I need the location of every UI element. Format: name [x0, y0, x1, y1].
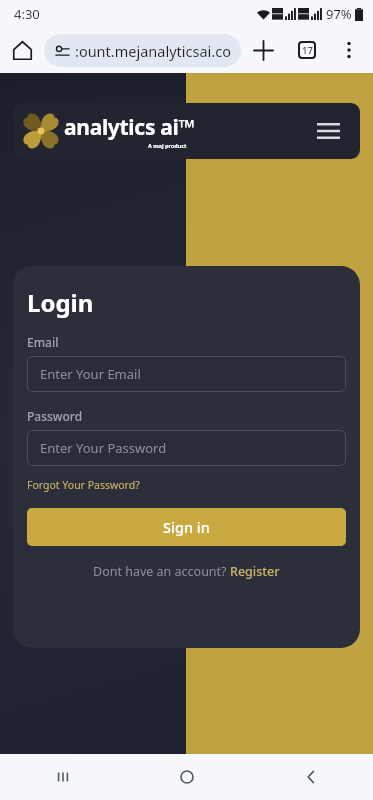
staticText: 17 [302, 44, 313, 57]
staticText: Sign in [163, 517, 210, 537]
button[interactable]: Home [0, 28, 44, 72]
staticText: Enter Your Password [40, 439, 167, 457]
staticText: 4:30 [14, 5, 40, 23]
staticText: :ount.mejanalyticsai.com [75, 41, 241, 61]
button[interactable]: Back [249, 754, 373, 800]
button[interactable]: Tabs [285, 28, 329, 72]
staticText: Login [27, 286, 94, 319]
button[interactable]: New tab [241, 28, 285, 72]
button[interactable]: Forgot Your Password? [27, 478, 140, 492]
staticText: Password [27, 408, 83, 424]
staticText: Forgot Your Password? [27, 478, 140, 492]
staticText: Enter Your Email [40, 365, 141, 383]
button[interactable]: Recents [0, 754, 125, 800]
button[interactable]: :ount.mejanalyticsai.com [44, 34, 241, 67]
button[interactable]: Home [125, 754, 249, 800]
staticText: analytics ai™ [64, 113, 195, 142]
staticText: Dont have an account? [93, 563, 230, 580]
staticText: Email [27, 334, 59, 350]
button[interactable]: Enter Your Email [27, 356, 346, 392]
button[interactable]: More options [329, 30, 369, 70]
button[interactable]: Sign in [27, 508, 346, 546]
button[interactable]: Menu [313, 116, 343, 146]
button[interactable]: Enter Your Password [27, 430, 346, 466]
staticText: Register [230, 563, 280, 580]
button[interactable]: Register [230, 563, 280, 580]
staticText: A maj product [148, 142, 187, 149]
staticText: 97% [326, 5, 352, 23]
